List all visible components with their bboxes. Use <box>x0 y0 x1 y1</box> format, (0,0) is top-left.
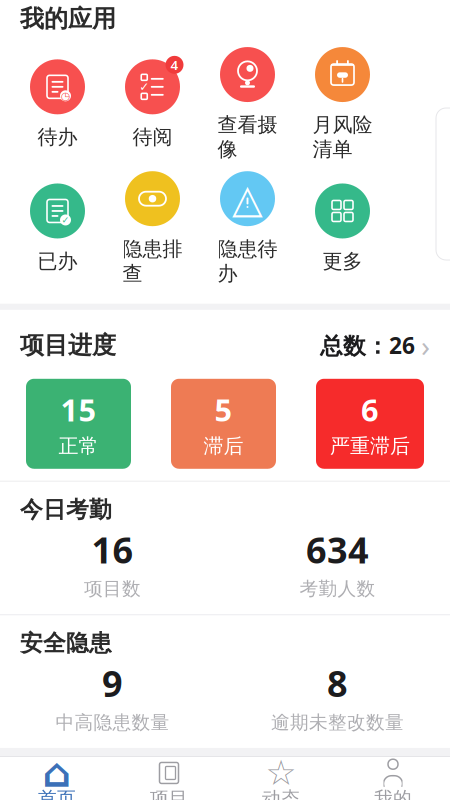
button[interactable]: ⌂ <box>1 757 113 800</box>
staticText: ◷ <box>61 90 70 102</box>
staticText: 中高隐患数量 <box>55 711 169 734</box>
staticText: 查看摄像 <box>217 113 277 162</box>
button[interactable]: 项目 <box>113 757 225 800</box>
staticText: 首页 <box>38 787 76 800</box>
staticText: 安全隐患 <box>20 629 112 657</box>
staticText: 我的应用 <box>20 4 116 34</box>
staticText: 隐患排查 <box>122 237 182 286</box>
staticText: △ <box>232 176 263 221</box>
staticText: 滞后 <box>203 434 243 458</box>
staticText: › <box>421 326 430 365</box>
staticText: 9 <box>102 659 123 707</box>
button[interactable]: ◷ <box>10 58 105 149</box>
button[interactable]: △ <box>200 170 295 286</box>
button[interactable]: 月风险清单 <box>295 46 390 162</box>
staticText: 严重滞后 <box>330 434 410 458</box>
staticText: 已办 <box>37 249 77 274</box>
staticText: 待办 <box>37 125 77 149</box>
button[interactable]: 隐患排查 <box>105 170 200 286</box>
staticText: 15 <box>60 389 96 430</box>
staticText: 月风险清单 <box>312 113 372 162</box>
staticText: ✓ <box>61 215 69 225</box>
button[interactable]: ✓ <box>105 58 200 149</box>
staticText: 8 <box>327 659 348 707</box>
staticText: 更多 <box>322 249 362 274</box>
staticText: 我的 <box>374 787 412 800</box>
staticText: 634 <box>306 526 369 573</box>
staticText: 今日考勤 <box>20 496 112 524</box>
staticText: 16 <box>91 526 133 573</box>
staticText: 项目 <box>150 787 188 800</box>
button[interactable]: 查看摄像 <box>200 46 295 162</box>
staticText: 待阅 <box>132 125 172 149</box>
staticText: 总数：26 <box>320 330 415 360</box>
staticText: 4 <box>170 56 178 74</box>
button[interactable]: 更多 <box>295 182 390 274</box>
button[interactable]: 6 <box>316 379 424 469</box>
staticText: 动态 <box>262 787 300 800</box>
button[interactable]: 我的 <box>337 757 449 800</box>
staticText: 逾期未整改数量 <box>271 711 404 734</box>
staticText: ☆ <box>265 753 296 793</box>
button[interactable]: ☆ <box>225 757 337 800</box>
staticText: ⌂ <box>42 750 71 796</box>
button[interactable]: ✓ <box>10 182 105 274</box>
button[interactable]: 总数：26 <box>320 326 430 365</box>
staticText: 项目数 <box>84 577 141 600</box>
staticText: 正常 <box>58 434 98 458</box>
staticText: 考勤人数 <box>299 577 375 600</box>
staticText: ✓ <box>139 80 149 94</box>
staticText: 项目进度 <box>20 331 116 360</box>
staticText: 隐患待办 <box>217 237 277 286</box>
button[interactable]: 5 <box>171 379 276 469</box>
button[interactable]: 15 <box>26 379 131 469</box>
staticText: 6 <box>361 389 379 430</box>
staticText: 5 <box>214 389 232 430</box>
